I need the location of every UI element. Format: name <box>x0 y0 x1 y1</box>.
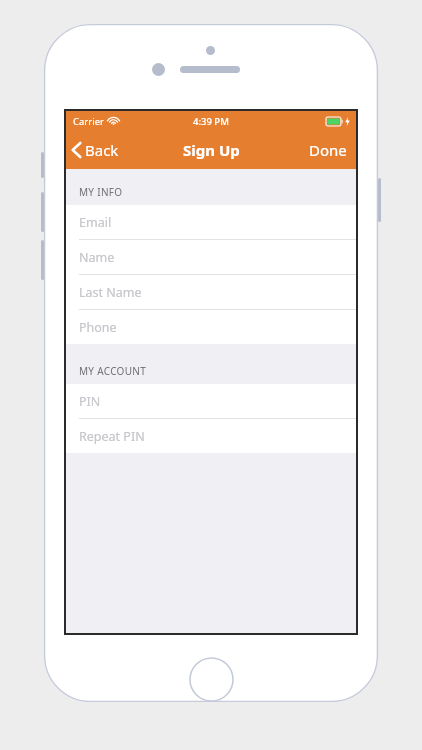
button[interactable]: Done <box>300 134 356 166</box>
button[interactable]: Repeat PIN <box>66 419 356 453</box>
button[interactable]: Email <box>66 205 356 239</box>
staticText: Repeat PIN <box>79 428 145 445</box>
staticText: MY ACCOUNT <box>79 364 147 378</box>
staticText: PIN <box>79 393 101 410</box>
button[interactable]: Back <box>66 134 127 166</box>
staticText: Carrier <box>73 115 104 128</box>
staticText: Email <box>79 214 112 231</box>
button[interactable]: Last Name <box>66 275 356 309</box>
staticText: Last Name <box>79 284 142 301</box>
button[interactable]: Phone <box>66 310 356 344</box>
staticText: MY INFO <box>79 185 123 199</box>
staticText: Sign Up <box>183 140 240 160</box>
staticText: Back <box>85 140 119 160</box>
button[interactable]: PIN <box>66 384 356 418</box>
staticText: Name <box>79 249 115 266</box>
staticText: Done <box>309 140 347 160</box>
staticText: 4:39 PM <box>193 115 229 128</box>
button[interactable]: Name <box>66 240 356 274</box>
staticText: Phone <box>79 319 117 336</box>
